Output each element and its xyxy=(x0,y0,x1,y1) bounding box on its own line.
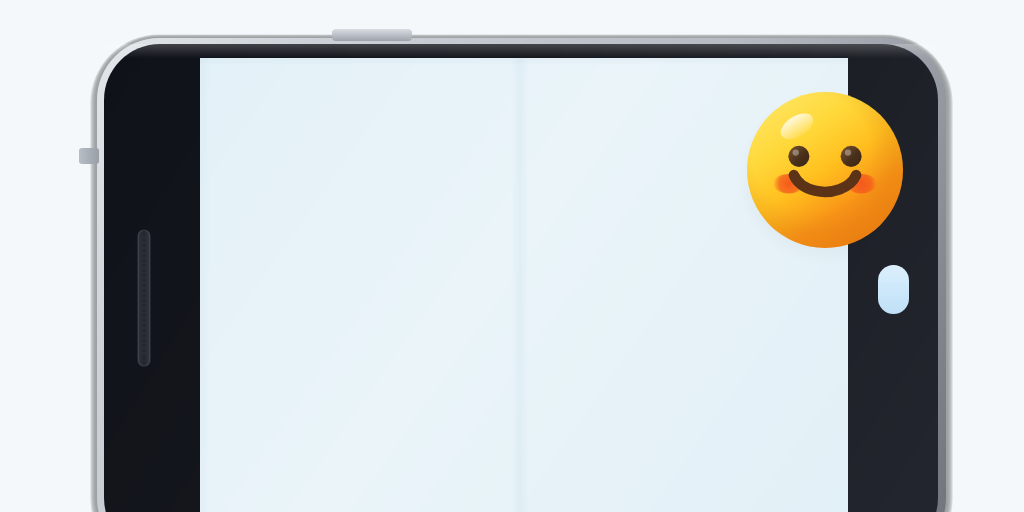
button[interactable]: Phone illustration with smiling face emo… xyxy=(0,0,1024,512)
